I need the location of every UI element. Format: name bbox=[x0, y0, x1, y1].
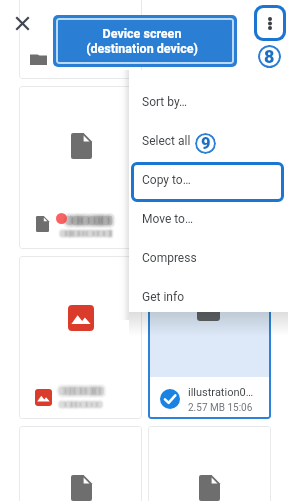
button[interactable] bbox=[19, 256, 142, 419]
button[interactable]: Copy to… bbox=[129, 160, 288, 199]
button[interactable] bbox=[19, 0, 142, 79]
button[interactable]: Step 9 bbox=[195, 133, 216, 154]
button[interactable]: More options bbox=[257, 8, 283, 38]
staticText: Compress bbox=[142, 251, 197, 265]
staticText: 8 bbox=[264, 46, 275, 67]
staticText: 9 bbox=[201, 134, 211, 153]
button[interactable]: Step 8 bbox=[258, 45, 281, 68]
staticText: Sort by… bbox=[142, 95, 187, 109]
button[interactable]: Sort by… bbox=[129, 82, 288, 121]
button[interactable]: Compress bbox=[129, 238, 288, 277]
button[interactable]: Get info bbox=[129, 277, 288, 316]
button[interactable] bbox=[148, 426, 271, 501]
button[interactable]: Close bbox=[11, 12, 34, 35]
button[interactable] bbox=[131, 162, 284, 202]
staticText: 2.57 MB 15:06 bbox=[188, 402, 253, 414]
button[interactable]: Device screen (destination device) bbox=[58, 20, 232, 62]
staticText: Get info bbox=[142, 290, 184, 304]
button[interactable] bbox=[19, 86, 142, 249]
button[interactable]: Select all bbox=[129, 121, 288, 160]
staticText: Device screen (destination device) bbox=[86, 26, 198, 56]
button[interactable]: Move to… bbox=[129, 199, 288, 238]
staticText: Select all bbox=[142, 134, 191, 148]
staticText: Move to… bbox=[142, 212, 193, 226]
button[interactable] bbox=[19, 426, 142, 501]
staticText: illustration0… bbox=[188, 386, 254, 399]
button[interactable]: illustration0… bbox=[148, 256, 271, 419]
staticText: Copy to… bbox=[142, 173, 191, 187]
